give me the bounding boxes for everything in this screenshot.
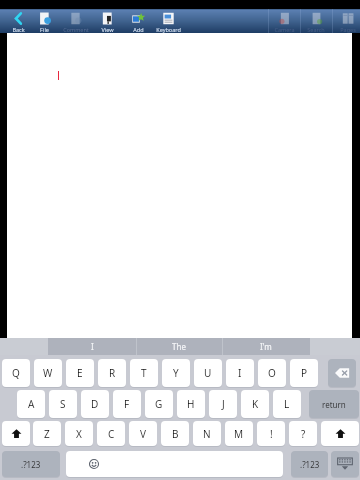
button[interactable]: File xyxy=(30,9,58,33)
staticText: A xyxy=(28,397,35,411)
staticText: C xyxy=(108,427,115,441)
staticText: .?123 xyxy=(300,459,320,470)
button[interactable]: J xyxy=(209,390,237,418)
staticText: Pages xyxy=(340,26,356,33)
staticText: M xyxy=(234,427,244,441)
button[interactable]: L xyxy=(273,390,301,418)
button[interactable]: D xyxy=(81,390,109,418)
staticText: E xyxy=(77,366,83,380)
staticText: Keyboard xyxy=(156,26,181,33)
staticText: I'm xyxy=(260,341,272,352)
button[interactable]: E xyxy=(66,359,94,387)
button[interactable]: Search xyxy=(302,9,330,33)
staticText: Search xyxy=(307,26,325,33)
staticText: ! xyxy=(270,427,273,441)
button[interactable]: F xyxy=(113,390,141,418)
staticText: return xyxy=(322,399,346,410)
button[interactable]: G xyxy=(145,390,173,418)
staticText: O xyxy=(268,366,276,380)
button[interactable]: Comment xyxy=(60,9,91,33)
button[interactable]: I xyxy=(48,338,136,355)
staticText: F xyxy=(124,397,130,411)
button[interactable]: ? xyxy=(289,421,317,446)
button[interactable]: .?123 xyxy=(2,451,60,477)
staticText: J xyxy=(222,397,225,411)
button[interactable]: W xyxy=(34,359,62,387)
staticText: P xyxy=(301,366,308,380)
button[interactable]: R xyxy=(98,359,126,387)
staticText: U xyxy=(204,366,212,380)
button[interactable]: I xyxy=(226,359,254,387)
button[interactable]: .?123 xyxy=(291,451,328,477)
button[interactable]: N xyxy=(193,421,221,446)
button[interactable]: O xyxy=(258,359,286,387)
button[interactable]: Back xyxy=(4,9,32,33)
staticText: I xyxy=(91,341,94,352)
button[interactable]: Shift xyxy=(321,421,359,446)
button[interactable]: ! xyxy=(257,421,285,446)
button[interactable]: Hide keyboard xyxy=(331,451,359,477)
staticText: K xyxy=(252,397,259,411)
button[interactable]: View xyxy=(93,9,121,33)
staticText: R xyxy=(109,366,116,380)
button[interactable]: M xyxy=(225,421,253,446)
staticText: N xyxy=(203,427,211,441)
button[interactable]: P xyxy=(290,359,318,387)
staticText: H xyxy=(187,397,195,411)
button[interactable]: K xyxy=(241,390,269,418)
button[interactable]: return xyxy=(309,390,359,418)
button[interactable]: Space xyxy=(66,451,283,477)
button[interactable]: Camera xyxy=(270,9,298,33)
staticText: I xyxy=(238,366,242,380)
staticText: File xyxy=(40,26,49,33)
staticText: Camera xyxy=(274,26,295,33)
staticText: Q xyxy=(12,366,20,380)
button[interactable]: A xyxy=(17,390,45,418)
staticText: Z xyxy=(44,427,50,441)
staticText: .?123 xyxy=(21,459,41,470)
button[interactable]: Add xyxy=(124,9,152,33)
staticText: ? xyxy=(301,427,306,441)
button[interactable]: B xyxy=(161,421,189,446)
staticText: T xyxy=(141,366,147,380)
staticText: G xyxy=(155,397,163,411)
staticText: X xyxy=(76,427,82,441)
button[interactable]: C xyxy=(97,421,125,446)
staticText: W xyxy=(43,366,53,380)
button[interactable]: Z xyxy=(33,421,61,446)
button[interactable]: U xyxy=(194,359,222,387)
button[interactable]: Y xyxy=(162,359,190,387)
button[interactable]: T xyxy=(130,359,158,387)
button[interactable]: H xyxy=(177,390,205,418)
staticText: V xyxy=(140,427,146,441)
button[interactable]: Q xyxy=(2,359,30,387)
staticText: L xyxy=(284,397,290,411)
staticText: D xyxy=(91,397,99,411)
staticText: S xyxy=(60,397,66,411)
staticText: View xyxy=(101,26,114,33)
button[interactable]: Keyboard xyxy=(152,9,184,33)
button[interactable]: X xyxy=(65,421,93,446)
staticText: B xyxy=(172,427,179,441)
button[interactable]: The xyxy=(136,338,222,355)
staticText: Back xyxy=(12,26,25,33)
button[interactable]: Shift xyxy=(2,421,30,446)
button[interactable]: S xyxy=(49,390,77,418)
staticText: Y xyxy=(173,366,179,380)
button[interactable]: V xyxy=(129,421,157,446)
button[interactable]: I'm xyxy=(222,338,310,355)
staticText: Add xyxy=(133,26,144,33)
staticText: Comment xyxy=(63,26,89,33)
staticText: The xyxy=(172,341,186,352)
button[interactable]: Pages xyxy=(334,9,360,33)
button[interactable]: Backspace xyxy=(328,359,356,387)
